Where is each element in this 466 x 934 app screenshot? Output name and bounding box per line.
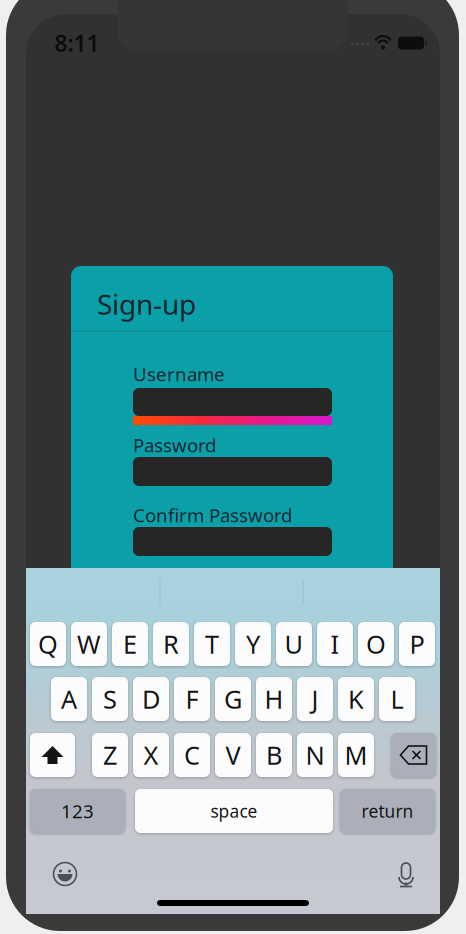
staticText: W: [77, 627, 101, 661]
button[interactable]: E: [112, 622, 148, 666]
staticText: Z: [103, 738, 117, 772]
button[interactable]: Shift: [30, 733, 75, 777]
staticText: space: [210, 799, 257, 822]
staticText: F: [185, 682, 198, 716]
staticText: C: [184, 738, 200, 772]
staticText: R: [163, 627, 179, 661]
staticText: L: [390, 682, 403, 716]
staticText: E: [123, 627, 137, 661]
button[interactable]: V: [215, 733, 251, 777]
button[interactable]: C: [174, 733, 210, 777]
button[interactable]: J: [297, 677, 333, 721]
button[interactable]: R: [153, 622, 189, 666]
button[interactable]: K: [338, 677, 374, 721]
button[interactable]: S: [92, 677, 128, 721]
staticText: M: [344, 738, 367, 772]
staticText: J: [311, 682, 318, 716]
button[interactable]: Y: [235, 622, 271, 666]
staticText: N: [305, 738, 324, 772]
staticText: Sign-up: [97, 285, 196, 323]
staticText: Password: [133, 433, 216, 457]
button[interactable]: 123: [30, 789, 125, 833]
staticText: Q: [38, 627, 58, 661]
staticText: H: [264, 682, 283, 716]
staticText: O: [366, 627, 386, 661]
button[interactable]: O: [358, 622, 394, 666]
button[interactable]: F: [174, 677, 210, 721]
button[interactable]: B: [256, 733, 292, 777]
staticText: Username: [133, 362, 225, 386]
staticText: K: [348, 682, 364, 716]
button[interactable]: Dictate: [396, 862, 416, 888]
staticText: 8:11: [54, 28, 99, 58]
staticText: I: [330, 627, 339, 661]
staticText: return: [361, 799, 413, 822]
button[interactable]: T: [194, 622, 230, 666]
staticText: A: [61, 682, 77, 716]
button[interactable]: I: [317, 622, 353, 666]
button[interactable]: Emoji: [52, 861, 77, 886]
button[interactable]: return: [340, 789, 435, 833]
button[interactable]: Z: [92, 733, 128, 777]
staticText: S: [103, 682, 117, 716]
button[interactable]: P: [399, 622, 435, 666]
staticText: 123: [61, 799, 94, 823]
button[interactable]: A: [51, 677, 87, 721]
button[interactable]: W: [71, 622, 107, 666]
staticText: B: [266, 738, 282, 772]
button[interactable]: Q: [30, 622, 66, 666]
button[interactable]: X: [133, 733, 169, 777]
staticText: Y: [246, 627, 260, 661]
button[interactable]: L: [379, 677, 415, 721]
button[interactable]: Delete: [391, 733, 436, 777]
button[interactable]: M: [338, 733, 374, 777]
staticText: V: [225, 738, 240, 772]
button[interactable]: U: [276, 622, 312, 666]
staticText: T: [205, 627, 219, 661]
button[interactable]: G: [215, 677, 251, 721]
button[interactable]: H: [256, 677, 292, 721]
staticText: X: [143, 738, 158, 772]
staticText: P: [409, 627, 424, 661]
button[interactable]: N: [297, 733, 333, 777]
button[interactable]: D: [133, 677, 169, 721]
staticText: U: [284, 627, 303, 661]
staticText: D: [142, 682, 160, 716]
staticText: Confirm Password: [133, 503, 292, 527]
button[interactable]: space: [135, 789, 333, 833]
staticText: G: [224, 682, 242, 716]
